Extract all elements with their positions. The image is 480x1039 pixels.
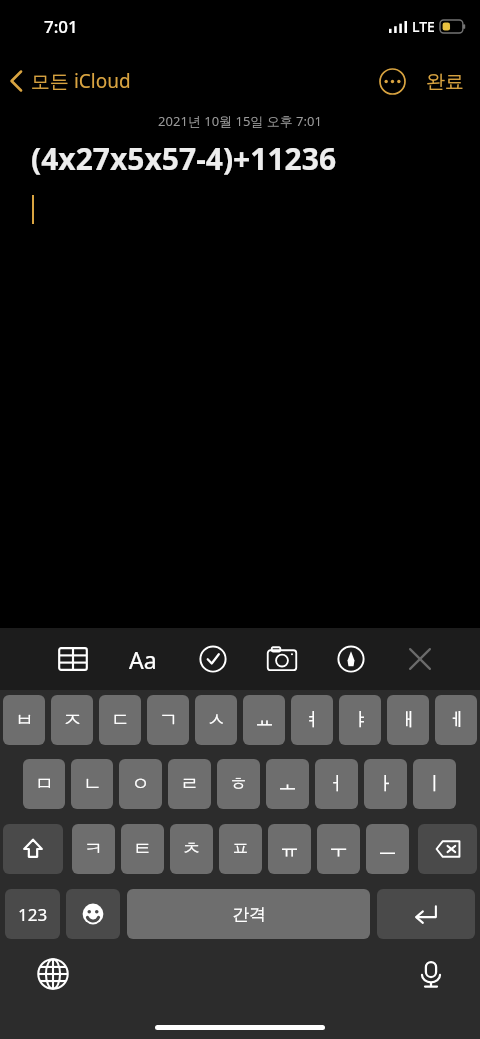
staticText: ㅅ <box>207 708 226 732</box>
button[interactable]: ㅎ <box>217 759 260 809</box>
staticText: ㅑ <box>351 708 370 732</box>
staticText: ㅏ <box>376 772 395 796</box>
staticText: ㅕ <box>303 708 322 732</box>
staticText: ㅂ <box>15 708 34 732</box>
button[interactable]: ㅁ <box>23 759 65 809</box>
staticText: ㅓ <box>327 772 346 796</box>
button[interactable]: ㅡ <box>366 824 409 874</box>
button[interactable]: ㅠ <box>268 824 311 874</box>
button[interactable]: 123 <box>5 889 60 939</box>
button[interactable]: ㄷ <box>99 695 141 745</box>
button[interactable]: ㅣ <box>413 759 456 809</box>
staticText: ㅊ <box>182 837 201 861</box>
button[interactable]: 모든 iCloud <box>0 64 141 98</box>
button[interactable]: Change keyboard <box>30 951 76 997</box>
button[interactable]: ㅛ <box>243 695 285 745</box>
staticText: 모든 iCloud <box>31 68 131 94</box>
button[interactable]: 완료 <box>418 64 472 100</box>
staticText: 123 <box>18 903 48 926</box>
staticText: ㅛ <box>255 708 274 732</box>
staticText: ㅁ <box>35 772 54 796</box>
button[interactable]: ㅌ <box>121 824 164 874</box>
button[interactable]: ㅈ <box>51 695 93 745</box>
staticText: ㅔ <box>447 708 466 732</box>
button[interactable]: Emoji <box>66 889 120 939</box>
button[interactable]: ㅕ <box>291 695 333 745</box>
button[interactable]: ㅐ <box>387 695 429 745</box>
button[interactable]: Close keyboard <box>385 628 454 690</box>
button[interactable]: 간격 <box>127 889 370 939</box>
button[interactable]: Table <box>38 628 108 690</box>
button[interactable]: ㅏ <box>364 759 407 809</box>
staticText: ㄷ <box>111 708 130 732</box>
staticText: (4x27x5x57-4)+11236 <box>31 138 337 179</box>
staticText: ㅗ <box>278 772 297 796</box>
button[interactable]: ㄴ <box>71 759 113 809</box>
staticText: ㅋ <box>84 837 103 861</box>
button[interactable]: ㅂ <box>3 695 45 745</box>
staticText: Aa <box>129 644 157 675</box>
staticText: ㅠ <box>280 837 299 861</box>
button[interactable]: ㄱ <box>147 695 189 745</box>
button[interactable]: ㅓ <box>315 759 358 809</box>
button[interactable]: ㅊ <box>170 824 213 874</box>
staticText: ㅎ <box>229 772 248 796</box>
staticText: ㅇ <box>131 772 150 796</box>
button[interactable]: Dictation <box>408 951 454 997</box>
staticText: ㄱ <box>159 708 178 732</box>
button[interactable]: ㅗ <box>266 759 309 809</box>
button[interactable]: Text format <box>108 628 178 690</box>
staticText: 완료 <box>426 70 464 94</box>
staticText: ㅐ <box>399 708 418 732</box>
staticText: ㅍ <box>231 837 250 861</box>
button[interactable]: Return <box>377 889 475 939</box>
staticText: ㅜ <box>329 837 348 861</box>
button[interactable]: Backspace <box>418 824 477 874</box>
button[interactable]: Markup <box>316 628 385 690</box>
staticText: 2021년 10월 15일 오후 7:01 <box>0 112 480 130</box>
staticText: LTE <box>412 17 435 36</box>
staticText: 7:01 <box>44 15 78 38</box>
button[interactable]: ㄹ <box>168 759 211 809</box>
button[interactable]: ㅅ <box>195 695 237 745</box>
button[interactable]: ㅇ <box>119 759 162 809</box>
button[interactable]: ㅋ <box>72 824 115 874</box>
staticText: ㅌ <box>133 837 152 861</box>
button[interactable]: ㅜ <box>317 824 360 874</box>
button[interactable]: ㅑ <box>339 695 381 745</box>
button[interactable]: More options <box>373 62 412 101</box>
staticText: 간격 <box>232 904 266 925</box>
button[interactable]: ㅍ <box>219 824 262 874</box>
button[interactable]: Camera <box>247 628 316 690</box>
button[interactable]: ㅔ <box>435 695 477 745</box>
button[interactable]: Shift <box>3 824 63 874</box>
staticText: ㅈ <box>63 708 82 732</box>
button[interactable]: Checklist <box>178 628 247 690</box>
staticText: ㄹ <box>180 772 199 796</box>
staticText: ㅡ <box>378 837 397 861</box>
staticText: ㄴ <box>83 772 102 796</box>
staticText: ㅣ <box>425 772 444 796</box>
